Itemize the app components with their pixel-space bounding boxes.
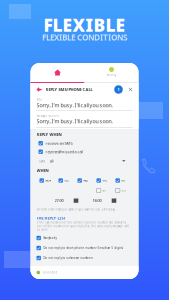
staticText: FRI — [121, 179, 125, 182]
staticText: Sorry, I'm busy. I'll call you soon. — [36, 118, 112, 125]
staticText: Setting — [106, 73, 116, 76]
button[interactable]: receive an SMS — [30, 139, 138, 147]
staticText: Do not reply to short phone number (less… — [43, 246, 123, 250]
staticText: WHEN — [36, 168, 48, 173]
staticText: SIM — [38, 158, 45, 164]
staticText: 18:00 — [92, 198, 101, 203]
staticText: FLEXIBLE — [43, 13, 125, 36]
staticText: TUE — [64, 179, 68, 182]
staticText: Title — [36, 98, 42, 101]
button[interactable]: Everybody — [36, 233, 132, 243]
button[interactable]: SIM all — [30, 156, 138, 166]
staticText: Everybody — [43, 236, 56, 240]
button[interactable]: Edit start time — [72, 197, 79, 204]
staticText: 1 — [117, 87, 119, 92]
button[interactable]: Edit end time — [110, 197, 117, 204]
staticText: 27:00 — [54, 198, 63, 203]
button[interactable]: Do not reply to short phone number (less… — [36, 243, 132, 253]
button[interactable]: SUN — [115, 187, 134, 194]
staticText: Set time limit empty or same if you want… — [36, 208, 115, 211]
staticText: receive an SMS — [45, 141, 72, 146]
button[interactable]: Do not reply to unknown numbers — [36, 253, 132, 263]
button[interactable]: Enable auto reply — [113, 84, 123, 94]
staticText: SAT — [102, 189, 106, 192]
button[interactable]: rejected/missed a call — [30, 147, 138, 156]
staticText: SUN — [121, 189, 126, 192]
staticText: rejected/missed a call — [45, 149, 83, 154]
button[interactable]: Home — [30, 63, 84, 82]
staticText: Do not reply to unknown numbers — [43, 256, 92, 260]
staticText: Message content — [36, 114, 59, 117]
staticText: all — [49, 158, 53, 164]
staticText: THU — [102, 179, 107, 182]
staticText: REPLY WHEN — [36, 132, 61, 137]
staticText: REPLY SMS/PHONE CALL — [45, 87, 92, 92]
button[interactable]: THU — [96, 177, 115, 184]
button[interactable]: Close — [127, 85, 133, 94]
button[interactable]: FRI — [115, 177, 134, 184]
staticText: Sorry, I'm busy. I'll call you soon. — [36, 102, 112, 109]
button[interactable]: SAT — [96, 187, 115, 194]
button[interactable]: Setting — [84, 63, 138, 82]
staticText: WED — [83, 179, 88, 182]
staticText: FLEXIBLE CONDITIONS — [42, 32, 127, 43]
button[interactable]: TUE — [58, 177, 77, 184]
staticText: If the last numbers of the sender's phon… — [36, 221, 129, 231]
staticText: connected — [43, 271, 58, 274]
button[interactable]: MON — [39, 177, 58, 184]
staticText: THE REPLY LIST — [36, 215, 65, 221]
staticText: MON — [45, 179, 51, 182]
button[interactable]: WED — [77, 177, 96, 184]
